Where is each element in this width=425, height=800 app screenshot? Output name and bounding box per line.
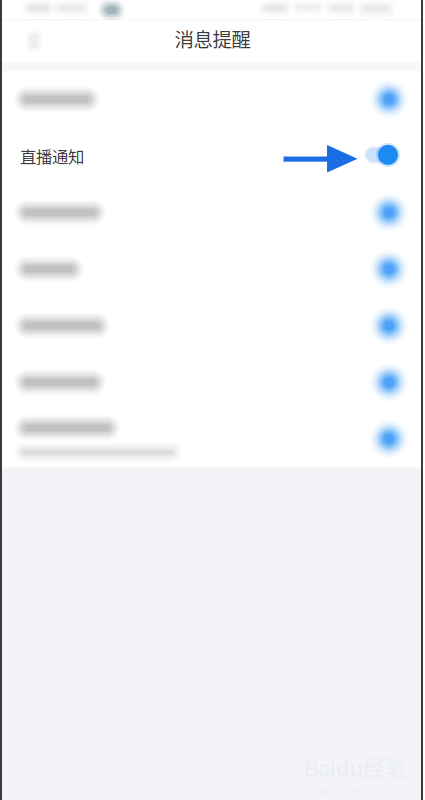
staticText: 消息提醒 [174,24,250,53]
button[interactable] [0,354,425,411]
staticText: 直播通知 [20,144,84,168]
button[interactable] [0,411,425,467]
button[interactable]: 直播通知 [0,128,425,184]
button[interactable] [0,71,425,128]
button[interactable] [0,241,425,297]
button[interactable]: Back [17,20,51,62]
button[interactable] [0,184,425,241]
button[interactable] [0,297,425,354]
